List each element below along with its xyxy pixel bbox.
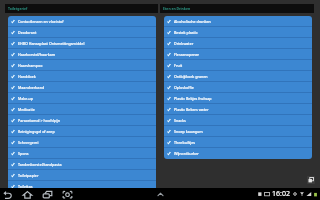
- button[interactable]: Haarshampoo: [8, 60, 156, 71]
- button[interactable]: Make-up: [8, 93, 156, 104]
- button[interactable]: Medicatie: [8, 104, 156, 115]
- staticText: Haarshampoo: [18, 63, 43, 68]
- staticText: Haarborstel/haarkam: [18, 52, 56, 57]
- button[interactable]: Restore window: [307, 176, 315, 184]
- button[interactable]: Plastic Bekjes fruitsap: [164, 93, 312, 104]
- staticText: Toilettas: [18, 184, 33, 189]
- staticText: Flessenopener: [174, 52, 200, 57]
- button[interactable]: Alcoholische dranken: [164, 16, 312, 27]
- staticText: EHBO Hansaplast Ontsmettingsmiddel: [18, 41, 85, 46]
- staticText: Paracetamol > hoofdpijn: [18, 118, 61, 123]
- staticText: Medicatie: [18, 107, 35, 112]
- staticText: 16:02: [272, 189, 290, 199]
- button[interactable]: Fruit: [164, 60, 312, 71]
- staticText: Eten en Drinken: [163, 6, 191, 11]
- button[interactable]: Handdoek: [8, 71, 156, 82]
- button[interactable]: Recents: [41, 188, 53, 200]
- button[interactable]: Toiletgerief: [5, 4, 158, 13]
- staticText: Make-up: [18, 96, 34, 101]
- button[interactable]: Snoep kauwgum: [164, 126, 312, 137]
- staticText: Snoep kauwgum: [174, 129, 203, 134]
- staticText: Reinigingsgel of zeep: [18, 129, 55, 134]
- button[interactable]: Wijnontkurker: [164, 148, 312, 159]
- button[interactable]: Scheergerei: [8, 137, 156, 148]
- staticText: Bestek plastic: [174, 30, 198, 35]
- button[interactable]: Snacks: [164, 115, 312, 126]
- staticText: Scheergerei: [18, 140, 39, 145]
- staticText: Alcoholische dranken: [174, 19, 211, 24]
- staticText: Oploskoffie: [174, 85, 194, 90]
- button[interactable]: Bestek plastic: [164, 27, 312, 38]
- button[interactable]: Drinkwater: [164, 38, 312, 49]
- button[interactable]: Spons: [8, 148, 156, 159]
- staticText: Snacks: [174, 118, 186, 123]
- staticText: Plastic Bekers water: [174, 107, 209, 112]
- button[interactable]: Ontbijtkoek granen: [164, 71, 312, 82]
- button[interactable]: Theebuiltjes: [164, 137, 312, 148]
- staticText: Ontbijtkoek granen: [174, 74, 208, 79]
- staticText: Wijnontkurker: [174, 151, 199, 156]
- button[interactable]: Back: [1, 188, 13, 200]
- staticText: Plastic Bekjes fruitsap: [174, 96, 212, 101]
- button[interactable]: Toilettas: [8, 181, 156, 192]
- button[interactable]: Reinigingsgel of zeep: [8, 126, 156, 137]
- staticText: Handdoek: [18, 74, 36, 79]
- button[interactable]: Maandverband: [8, 82, 156, 93]
- button[interactable]: Toiletpapier: [8, 170, 156, 181]
- staticText: Contactlenzen en vloeistof: [18, 19, 64, 24]
- button[interactable]: Eten en Drinken: [160, 4, 314, 13]
- button[interactable]: Deodorant: [8, 27, 156, 38]
- button[interactable]: Oploskoffie: [164, 82, 312, 93]
- button[interactable]: Screenshot: [61, 188, 73, 200]
- button[interactable]: Contactlenzen en vloeistof: [8, 16, 156, 27]
- staticText: Toiletgerief: [8, 6, 28, 11]
- staticText: Fruit: [174, 63, 183, 68]
- button[interactable]: Tandenborstel/tandpasta: [8, 159, 156, 170]
- staticText: Drinkwater: [174, 41, 194, 46]
- staticText: Maandverband: [18, 85, 45, 90]
- button[interactable]: Plastic Bekers water: [164, 104, 312, 115]
- button[interactable]: Flessenopener: [164, 49, 312, 60]
- staticText: Theebuiltjes: [174, 140, 195, 145]
- staticText: Toiletpapier: [18, 173, 39, 178]
- button[interactable]: Haarborstel/haarkam: [8, 49, 156, 60]
- button[interactable]: Paracetamol > hoofdpijn: [8, 115, 156, 126]
- staticText: Deodorant: [18, 30, 37, 35]
- staticText: Spons: [18, 151, 29, 156]
- staticText: Tandenborstel/tandpasta: [18, 162, 62, 167]
- button[interactable]: EHBO Hansaplast Ontsmettingsmiddel: [8, 38, 156, 49]
- button[interactable]: Home: [21, 188, 33, 200]
